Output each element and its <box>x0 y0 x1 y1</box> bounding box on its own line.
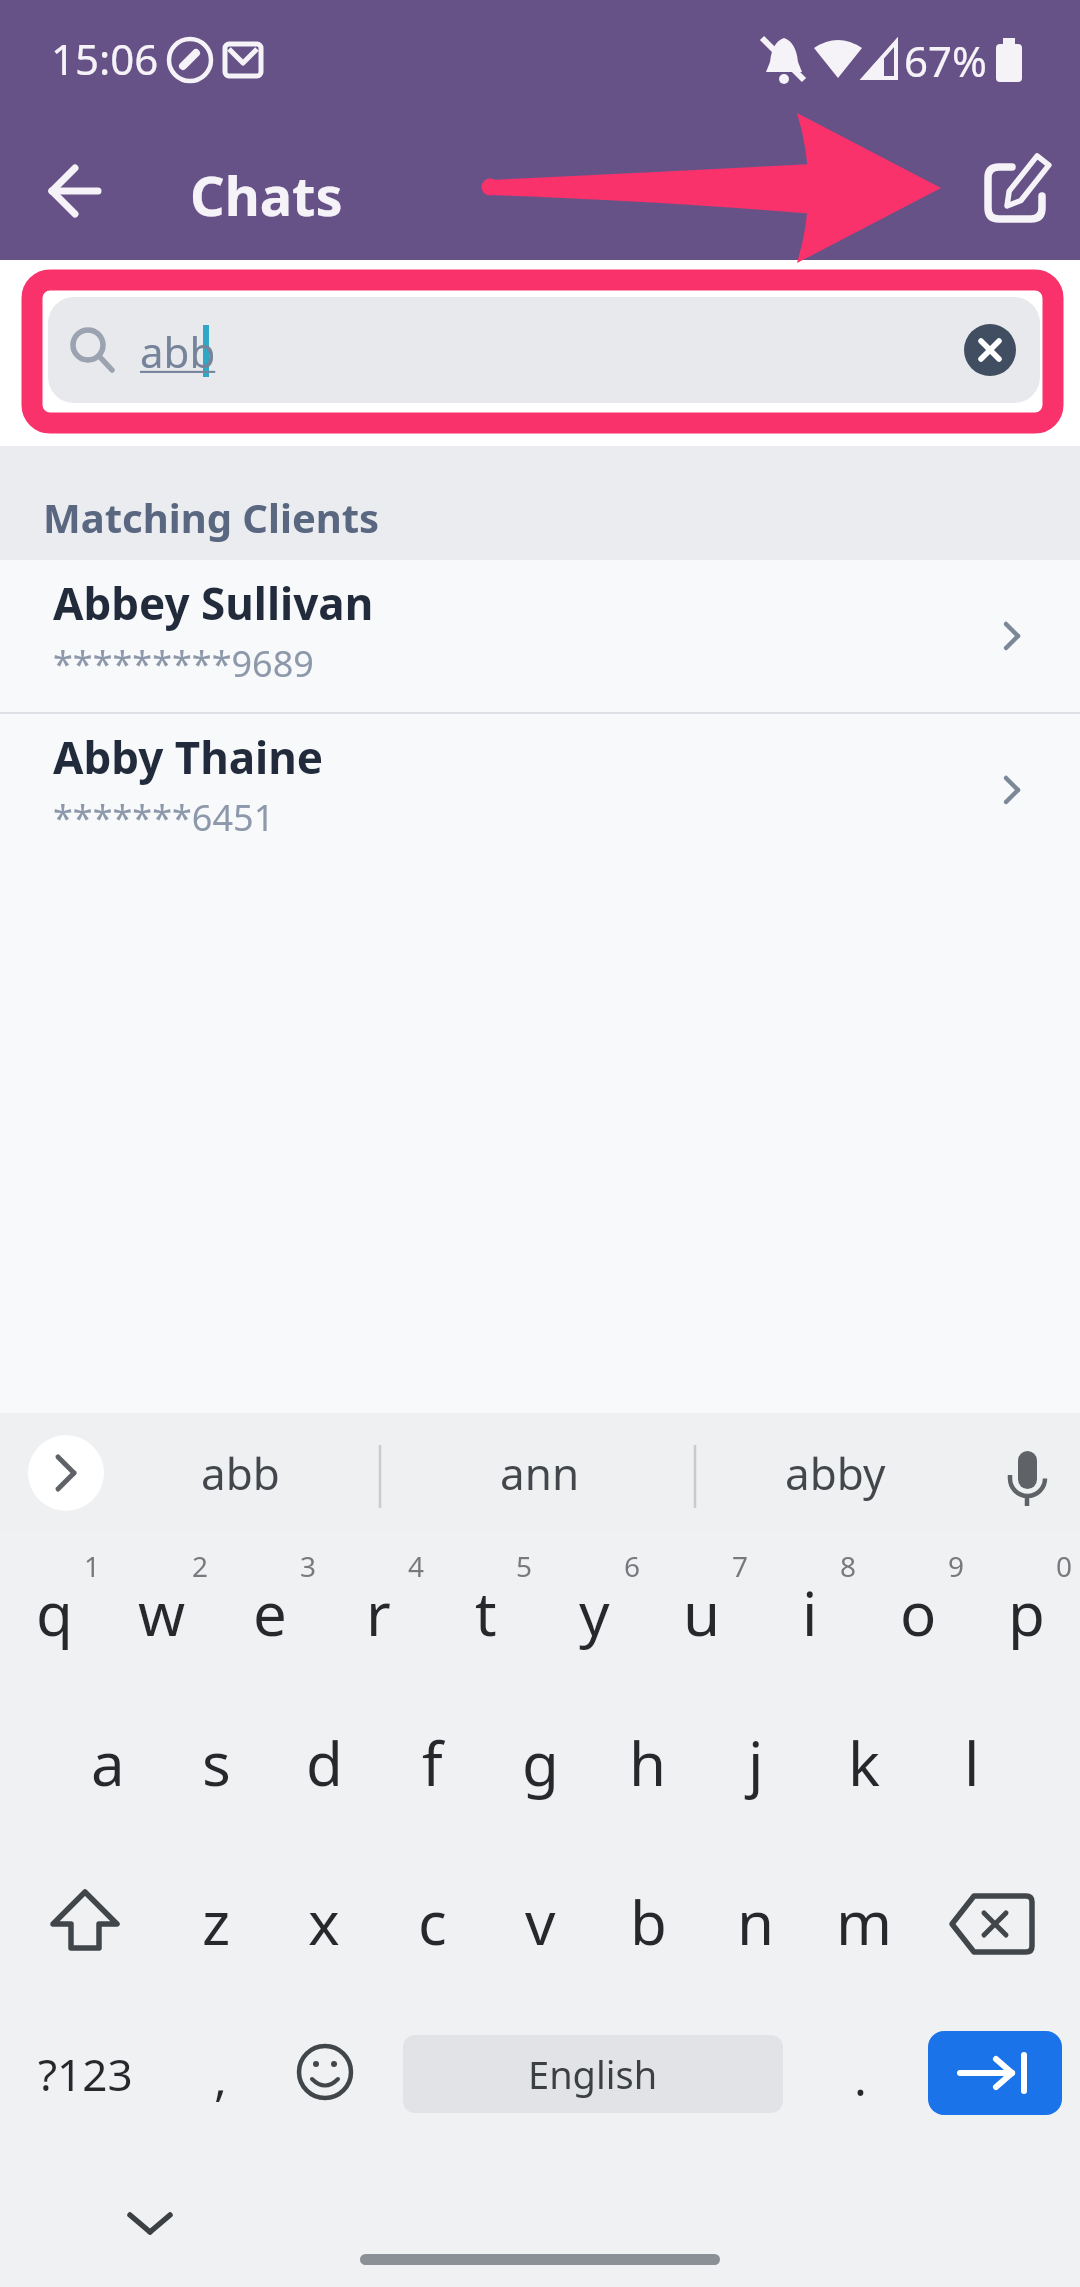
staticText: v <box>525 1881 556 1963</box>
staticText: s <box>202 1722 231 1804</box>
staticText: e <box>253 1572 287 1654</box>
button[interactable] <box>30 150 110 230</box>
staticText: Chats <box>190 158 343 228</box>
staticText: m <box>836 1881 893 1963</box>
staticText: l <box>964 1722 980 1804</box>
staticText: 3 <box>300 1547 317 1585</box>
button[interactable]: p <box>972 1548 1080 1678</box>
button[interactable] <box>28 1435 104 1511</box>
staticText: ann <box>500 1443 580 1503</box>
staticText: r <box>366 1572 391 1654</box>
staticText: o <box>900 1572 937 1654</box>
button[interactable]: h <box>594 1698 702 1828</box>
staticText: f <box>422 1722 443 1804</box>
button[interactable] <box>928 2031 1062 2115</box>
button[interactable]: o <box>864 1548 972 1678</box>
button[interactable]: y <box>540 1548 648 1678</box>
staticText: w <box>138 1572 186 1654</box>
button[interactable]: u <box>648 1548 756 1678</box>
staticText: ?123 <box>38 2044 133 2104</box>
button[interactable]: r <box>324 1548 432 1678</box>
button[interactable]: z <box>162 1857 270 1987</box>
staticText: . <box>854 2045 867 2110</box>
staticText: t <box>475 1572 497 1654</box>
staticText: b <box>630 1881 667 1963</box>
staticText: p <box>1008 1572 1045 1654</box>
button[interactable]: Abby Thaine <box>0 714 1080 866</box>
staticText: 67% <box>904 32 987 88</box>
staticText: c <box>418 1881 447 1963</box>
staticText: i <box>802 1572 818 1654</box>
staticText: 0 <box>1056 1547 1073 1585</box>
button[interactable] <box>110 2192 190 2252</box>
staticText: u <box>683 1572 721 1654</box>
button[interactable]: a <box>54 1698 162 1828</box>
button[interactable]: ann <box>440 1413 640 1532</box>
staticText: 15:06 <box>51 30 159 86</box>
button[interactable]: w <box>108 1548 216 1678</box>
staticText: 8 <box>840 1547 857 1585</box>
staticText: j <box>748 1722 764 1804</box>
staticText: 1 <box>84 1547 101 1585</box>
button[interactable]: abby <box>735 1413 935 1532</box>
button[interactable]: English <box>403 2035 783 2113</box>
staticText: z <box>202 1881 231 1963</box>
staticText: abb <box>140 323 216 379</box>
staticText: 7 <box>732 1547 749 1585</box>
staticText: k <box>848 1722 881 1804</box>
button[interactable]: v <box>486 1857 594 1987</box>
button[interactable]: s <box>162 1698 270 1828</box>
staticText: 4 <box>408 1547 425 1585</box>
button[interactable]: q <box>0 1548 108 1678</box>
button[interactable]: abb <box>140 1413 340 1532</box>
staticText: *********9689 <box>53 639 314 688</box>
staticText: abb <box>201 1443 280 1503</box>
staticText: q <box>36 1572 73 1654</box>
button[interactable]: abb <box>48 297 1040 403</box>
staticText: Matching Clients <box>43 490 380 544</box>
button[interactable]: b <box>594 1857 702 1987</box>
staticText: 5 <box>516 1547 533 1585</box>
staticText: Abbey Sullivan <box>53 573 374 633</box>
staticText: d <box>306 1722 343 1804</box>
button[interactable]: i <box>756 1548 864 1678</box>
button[interactable]: t <box>432 1548 540 1678</box>
staticText: , <box>214 2045 227 2110</box>
staticText: Abby Thaine <box>53 727 324 787</box>
staticText: x <box>308 1881 340 1963</box>
button[interactable]: l <box>918 1698 1026 1828</box>
button[interactable]: m <box>810 1857 918 1987</box>
staticText: n <box>737 1881 775 1963</box>
staticText: abby <box>785 1443 886 1503</box>
button[interactable]: g <box>486 1698 594 1828</box>
button[interactable]: e <box>216 1548 324 1678</box>
button[interactable]: c <box>378 1857 486 1987</box>
button[interactable]: x <box>270 1857 378 1987</box>
staticText: h <box>629 1722 667 1804</box>
button[interactable]: f <box>378 1698 486 1828</box>
staticText: English <box>528 2048 658 2100</box>
staticText: *******6451 <box>53 793 275 842</box>
staticText: 2 <box>192 1547 209 1585</box>
button[interactable]: d <box>270 1698 378 1828</box>
staticText: 9 <box>948 1547 965 1585</box>
button[interactable] <box>970 145 1060 235</box>
staticText: a <box>91 1722 125 1804</box>
button[interactable]: j <box>702 1698 810 1828</box>
button[interactable]: n <box>702 1857 810 1987</box>
staticText: g <box>522 1722 559 1804</box>
button[interactable]: k <box>810 1698 918 1828</box>
button[interactable]: Abbey Sullivan <box>0 560 1080 712</box>
staticText: y <box>579 1572 610 1654</box>
staticText: 6 <box>624 1547 641 1585</box>
button[interactable]: ?123 <box>20 2035 150 2113</box>
